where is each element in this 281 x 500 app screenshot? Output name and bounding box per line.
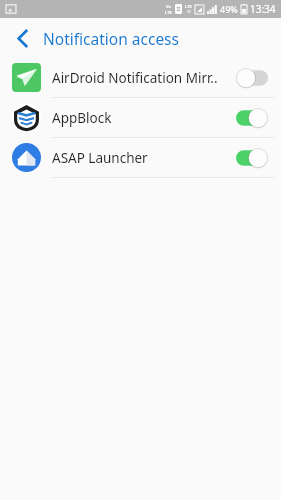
button[interactable]: On	[235, 104, 269, 132]
staticText: Notification access	[43, 28, 179, 49]
button[interactable]: AirDroid Notification Mirr..	[0, 58, 281, 97]
button[interactable]: Off	[235, 64, 269, 92]
staticText: LTE	[165, 10, 172, 15]
staticText: Vo	[166, 4, 172, 9]
staticText: LTE	[185, 4, 192, 9]
button[interactable]: AppBlock	[0, 98, 281, 137]
staticText: AirDroid Notification Mirr..	[52, 69, 235, 87]
staticText: AppBlock	[52, 109, 235, 127]
staticText: 4G	[187, 10, 191, 14]
staticText: 49%	[220, 3, 238, 15]
button[interactable]: Back	[8, 23, 38, 53]
staticText: ASAP Launcher	[52, 149, 235, 167]
button[interactable]: On	[235, 144, 269, 172]
staticText: 13:34	[250, 2, 276, 16]
button[interactable]: ASAP Launcher	[0, 138, 281, 177]
